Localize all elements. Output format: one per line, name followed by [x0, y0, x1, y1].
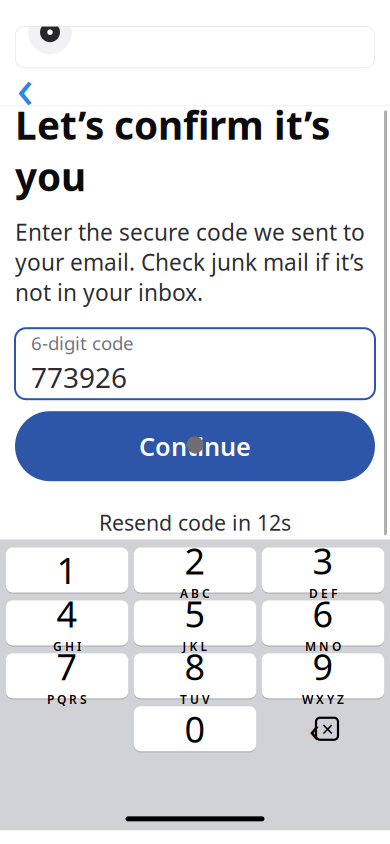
- staticText: G H I: [53, 638, 81, 654]
- button[interactable]: 4: [6, 599, 128, 647]
- button[interactable]: 8: [134, 652, 256, 699]
- staticText: 3: [312, 537, 333, 584]
- staticText: D E F: [309, 585, 337, 601]
- staticText: ‹: [16, 49, 33, 124]
- button[interactable]: 2: [134, 546, 256, 594]
- staticText: Continue: [139, 429, 251, 463]
- staticText: J K L: [182, 638, 207, 654]
- staticText: 5: [184, 590, 205, 637]
- staticText: 6: [312, 590, 333, 637]
- staticText: 8: [184, 642, 205, 690]
- staticText: 6-digit code: [31, 331, 134, 355]
- button[interactable]: 7: [6, 652, 128, 699]
- staticText: Enter password instead: [46, 560, 343, 593]
- staticText: 7: [56, 642, 77, 690]
- button[interactable]: Enter password instead: [15, 555, 375, 597]
- button[interactable]: Continue: [15, 411, 375, 481]
- button[interactable]: 6-digit code: [15, 328, 375, 399]
- staticText: P Q R S: [47, 691, 87, 707]
- staticText: Enter the secure code we sent to your em…: [15, 217, 365, 307]
- staticText: T U V: [180, 691, 210, 707]
- button[interactable]: 9: [262, 652, 384, 699]
- button[interactable]: 3: [262, 546, 384, 594]
- staticText: 0: [184, 705, 205, 753]
- button[interactable]: Back: [2, 67, 48, 107]
- staticText: ‹: [309, 706, 320, 752]
- staticText: W X Y Z: [302, 691, 344, 707]
- button[interactable]: 0: [134, 705, 256, 752]
- button[interactable]: Delete: [262, 705, 384, 752]
- staticText: A B C: [180, 585, 210, 601]
- staticText: 1: [56, 546, 77, 594]
- staticText: Let’s confirm it’s you: [15, 99, 330, 202]
- staticText: 4: [56, 590, 77, 637]
- staticText: 9: [312, 642, 333, 690]
- staticText: 9:41: [29, 26, 74, 56]
- button[interactable]: 6: [262, 599, 384, 647]
- staticText: Resend code in 12s: [99, 508, 291, 536]
- button[interactable]: 5: [134, 599, 256, 647]
- staticText: ×: [321, 715, 333, 743]
- button[interactable]: 1: [6, 546, 128, 594]
- staticText: 773926: [31, 358, 127, 396]
- staticText: 2: [184, 537, 205, 584]
- staticText: M N O: [305, 638, 341, 654]
